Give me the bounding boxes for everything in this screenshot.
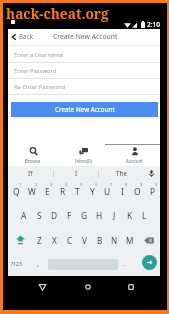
staticText: ?123 bbox=[11, 261, 22, 268]
button[interactable]: Account bbox=[109, 144, 160, 166]
button[interactable]: L bbox=[137, 204, 152, 228]
staticText: E bbox=[45, 186, 50, 197]
button[interactable]: Back bbox=[10, 29, 34, 44]
staticText: Q bbox=[13, 186, 20, 197]
button[interactable]: Backspace bbox=[137, 228, 160, 252]
button[interactable]: . bbox=[119, 252, 129, 276]
button[interactable]: X bbox=[47, 228, 62, 252]
staticText: N bbox=[111, 235, 118, 246]
button[interactable]: 0 bbox=[145, 180, 160, 204]
button[interactable]: J bbox=[107, 204, 122, 228]
button[interactable]: 5 bbox=[70, 180, 85, 204]
button[interactable]: If bbox=[8, 166, 53, 180]
staticText: 9 bbox=[140, 182, 143, 187]
staticText: D bbox=[51, 210, 58, 221]
button[interactable]: S bbox=[32, 204, 47, 228]
staticText: J bbox=[113, 210, 116, 221]
staticText: Create New Account bbox=[53, 32, 118, 41]
button[interactable]: Inbox(0) bbox=[58, 144, 109, 166]
staticText: V bbox=[82, 235, 87, 246]
staticText: T bbox=[75, 186, 80, 197]
staticText: 5 bbox=[80, 182, 83, 187]
button[interactable]: I bbox=[54, 166, 98, 180]
button[interactable]: 2 bbox=[24, 180, 40, 204]
staticText: Z bbox=[37, 235, 42, 246]
staticText: 1 bbox=[19, 182, 22, 187]
staticText: F bbox=[67, 210, 72, 221]
button[interactable]: G bbox=[77, 204, 92, 228]
button[interactable]: D bbox=[47, 204, 62, 228]
staticText: M bbox=[126, 235, 134, 246]
button[interactable]: Enter bbox=[142, 255, 157, 270]
staticText: Enter a Username bbox=[14, 51, 64, 59]
button[interactable]: 4 bbox=[55, 180, 70, 204]
button[interactable]: Re-Enter Password bbox=[8, 79, 160, 95]
button[interactable]: H bbox=[92, 204, 107, 228]
button[interactable]: Browse bbox=[8, 144, 58, 166]
button[interactable]: A bbox=[16, 204, 32, 228]
button[interactable]: Enter Password bbox=[8, 63, 160, 79]
staticText: I bbox=[75, 169, 78, 178]
button[interactable]: Enter a Username bbox=[8, 47, 160, 63]
staticText: X bbox=[52, 235, 57, 246]
staticText: Browse bbox=[25, 158, 41, 164]
staticText: 6 bbox=[95, 182, 98, 187]
button[interactable]: 8 bbox=[115, 180, 130, 204]
button[interactable]: Voice input bbox=[143, 166, 160, 180]
staticText: 8 bbox=[125, 182, 128, 187]
staticText: Y bbox=[90, 186, 95, 197]
staticText: I bbox=[121, 186, 124, 197]
staticText: Enter Password bbox=[14, 67, 57, 75]
staticText: 3 bbox=[50, 182, 53, 187]
staticText: W bbox=[28, 186, 36, 197]
staticText: 0 bbox=[155, 182, 158, 187]
staticText: B bbox=[97, 235, 103, 246]
staticText: U bbox=[104, 186, 111, 197]
staticText: . bbox=[123, 259, 125, 268]
staticText: G bbox=[81, 210, 88, 221]
button[interactable]: 3 bbox=[40, 180, 55, 204]
button[interactable]: Home bbox=[82, 281, 94, 293]
staticText: H bbox=[96, 210, 103, 221]
button[interactable]: Create New Account bbox=[11, 102, 158, 117]
staticText: C bbox=[67, 235, 73, 246]
staticText: R bbox=[60, 186, 66, 197]
button[interactable]: Recents bbox=[125, 281, 137, 293]
staticText: 2 bbox=[35, 182, 38, 187]
staticText: 7 bbox=[110, 182, 113, 187]
button[interactable]: C bbox=[62, 228, 77, 252]
button[interactable]: 1 bbox=[8, 180, 24, 204]
staticText: K bbox=[127, 210, 133, 221]
staticText: 2:10 bbox=[147, 20, 160, 29]
button[interactable]: F bbox=[62, 204, 77, 228]
button[interactable]: Z bbox=[32, 228, 47, 252]
staticText: Back bbox=[19, 32, 34, 41]
button[interactable]: V bbox=[77, 228, 92, 252]
staticText: If bbox=[28, 169, 33, 178]
button[interactable]: N bbox=[107, 228, 122, 252]
button[interactable]: 6 bbox=[85, 180, 100, 204]
button[interactable]: The bbox=[99, 166, 143, 180]
staticText: hack-cheat.org bbox=[6, 4, 109, 23]
button[interactable]: ?123 bbox=[8, 252, 24, 276]
button[interactable]: B bbox=[92, 228, 107, 252]
staticText: O bbox=[134, 186, 141, 197]
button[interactable]: , bbox=[33, 252, 43, 276]
staticText: Inbox(0) bbox=[75, 158, 92, 164]
staticText: P bbox=[150, 186, 156, 197]
button[interactable]: K bbox=[122, 204, 137, 228]
staticText: Re-Enter Password bbox=[14, 83, 66, 91]
button[interactable]: Back bbox=[36, 281, 48, 293]
staticText: S bbox=[37, 210, 42, 221]
button[interactable]: Shift bbox=[8, 228, 32, 252]
staticText: Create New Account bbox=[55, 105, 115, 114]
staticText: 4 bbox=[65, 182, 68, 187]
staticText: The bbox=[116, 169, 127, 178]
staticText: L bbox=[142, 210, 147, 221]
button[interactable]: M bbox=[122, 228, 137, 252]
staticText: A bbox=[21, 210, 27, 221]
button[interactable]: 9 bbox=[130, 180, 145, 204]
staticText: , bbox=[37, 259, 39, 268]
button[interactable]: 7 bbox=[100, 180, 115, 204]
